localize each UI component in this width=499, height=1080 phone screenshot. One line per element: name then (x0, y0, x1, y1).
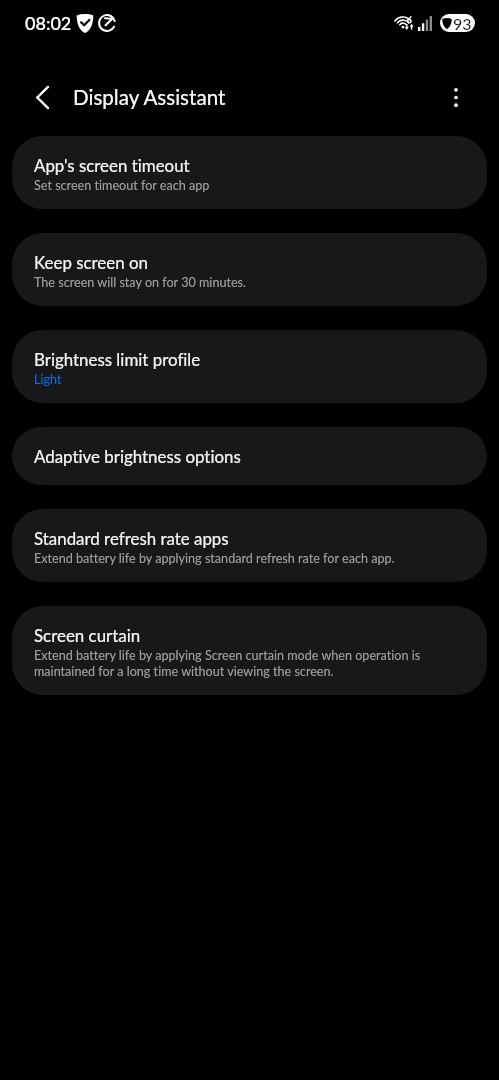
staticText: The screen will stay on for 30 minutes. (34, 274, 246, 290)
staticText: Standard refresh rate apps (34, 528, 229, 548)
staticText: Screen curtain (34, 625, 141, 645)
staticText: Light (34, 371, 62, 387)
button[interactable]: Standard refresh rate apps (12, 509, 487, 582)
staticText: Display Assistant (73, 85, 226, 110)
button[interactable]: Adaptive brightness options (12, 427, 487, 485)
staticText: App's screen timeout (34, 155, 190, 175)
staticText: Adaptive brightness options (34, 446, 241, 466)
staticText: Extend battery life by applying standard… (34, 550, 395, 566)
button[interactable]: Brightness limit profile (12, 330, 487, 403)
button[interactable]: More options (439, 80, 473, 114)
staticText: Keep screen on (34, 252, 148, 272)
staticText: Brightness limit profile (34, 349, 201, 369)
staticText: 08:02 (25, 12, 72, 34)
button[interactable]: Screen curtain (12, 606, 487, 695)
staticText: 93 (453, 14, 472, 32)
button[interactable]: Keep screen on (12, 233, 487, 306)
staticText: Extend battery life by applying Screen c… (34, 647, 465, 679)
button[interactable]: App's screen timeout (12, 136, 487, 209)
button[interactable]: Navigate up (22, 77, 62, 117)
staticText: Set screen timeout for each app (34, 177, 210, 193)
